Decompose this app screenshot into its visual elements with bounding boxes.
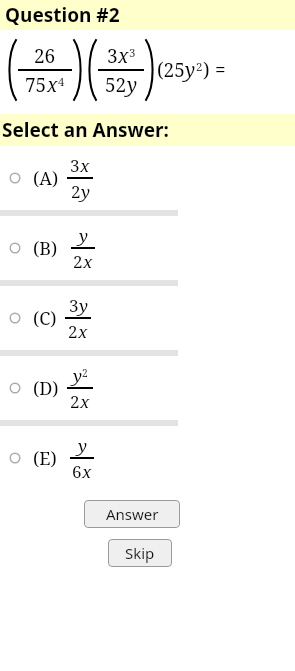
staticText: 2 xyxy=(71,180,81,203)
staticText: 2 xyxy=(68,320,78,343)
staticText: (D) xyxy=(33,376,59,401)
staticText: 2 xyxy=(70,390,80,413)
button[interactable]: Select option xyxy=(0,286,295,350)
staticText: (A) xyxy=(33,166,59,191)
staticText: 4 xyxy=(58,74,65,90)
other: Select option xyxy=(9,382,21,394)
other: Select option xyxy=(9,242,21,254)
staticText: = xyxy=(210,57,226,83)
staticText: (E) xyxy=(33,446,57,471)
staticText: 2 xyxy=(196,59,203,75)
staticText: (B) xyxy=(33,236,58,261)
staticText: (25 xyxy=(157,57,185,83)
staticText: 2 xyxy=(82,366,88,380)
staticText: y xyxy=(79,224,88,247)
staticText: x xyxy=(78,320,88,343)
staticText: y xyxy=(79,294,88,317)
staticText: 3 xyxy=(129,45,136,61)
staticText: x xyxy=(80,390,90,413)
button[interactable]: Select option xyxy=(0,426,295,490)
staticText: Select an Answer: xyxy=(2,117,169,143)
staticText: y xyxy=(127,72,138,98)
other: Select option xyxy=(9,172,21,184)
staticText: 2 xyxy=(73,250,83,273)
button[interactable]: Select option xyxy=(0,216,295,280)
staticText: Skip xyxy=(125,543,155,563)
staticText: x xyxy=(118,43,129,69)
other: Select option xyxy=(9,312,21,324)
button[interactable]: Select option xyxy=(0,146,295,210)
staticText: 6 xyxy=(72,460,82,483)
staticText: x xyxy=(47,72,58,98)
staticText: 52 xyxy=(105,72,127,98)
button[interactable]: Skip xyxy=(108,539,172,567)
staticText: y xyxy=(185,57,196,83)
staticText: x xyxy=(82,460,92,483)
staticText: Question #2 xyxy=(5,2,120,28)
staticText: y xyxy=(81,180,90,203)
staticText: 75 xyxy=(25,72,47,98)
staticText: 3 xyxy=(70,154,80,177)
staticText: y xyxy=(78,434,87,457)
other: Select option xyxy=(9,452,21,464)
staticText: y xyxy=(73,364,82,387)
staticText: ) xyxy=(203,57,210,83)
button[interactable]: Select option xyxy=(0,356,295,420)
staticText: 3 xyxy=(69,294,79,317)
staticText: (C) xyxy=(33,306,57,331)
staticText: 3 xyxy=(107,43,118,69)
staticText: Answer xyxy=(106,504,159,524)
staticText: x xyxy=(80,154,90,177)
staticText: x xyxy=(83,250,93,273)
staticText: 26 xyxy=(34,43,56,69)
button[interactable]: Answer xyxy=(84,500,180,528)
